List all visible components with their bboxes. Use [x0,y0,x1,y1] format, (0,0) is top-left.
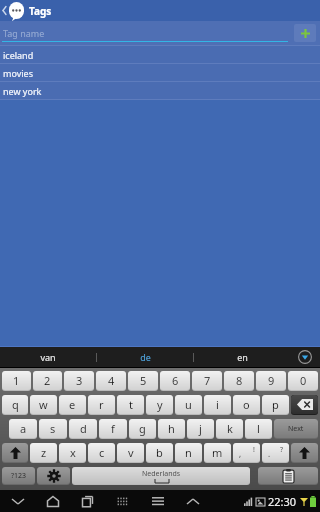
button[interactable]: en [194,347,290,367]
button[interactable]: 3 [64,371,94,390]
staticText: g [139,421,146,436]
button[interactable]: v [117,443,144,462]
staticText: 3 [76,373,83,388]
button[interactable]: Backspace [291,395,318,414]
button[interactable]: movies [0,64,320,81]
button[interactable]: Nederlands [72,467,250,484]
button[interactable]: x [59,443,86,462]
button[interactable]: 0 [288,371,318,390]
staticText: Next [288,424,304,434]
button[interactable]: Recent apps [70,490,105,512]
button[interactable]: s [39,419,67,438]
button[interactable]: q [2,395,28,414]
button[interactable]: van [0,347,96,367]
staticText: 9 [268,373,275,388]
button[interactable]: t [117,395,144,414]
button[interactable]: c [88,443,115,462]
button[interactable]: a [9,419,37,438]
staticText: , [239,448,242,459]
button[interactable]: Tag name [3,21,288,45]
staticText: h [168,421,175,436]
button[interactable]: m [204,443,231,462]
button[interactable]: ? [262,443,289,462]
staticText: de [140,351,151,363]
staticText: 5 [140,373,147,388]
button[interactable]: n [175,443,202,462]
button[interactable]: Menu [140,490,175,512]
staticText: q [12,397,19,412]
button[interactable]: Switch keyboard [105,490,140,512]
staticText: y [157,397,163,412]
button[interactable]: p [262,395,289,414]
staticText: Tags [29,4,52,18]
button[interactable]: h [158,419,185,438]
button[interactable]: d [69,419,97,438]
staticText: t [129,397,133,412]
staticText: van [40,351,56,363]
staticText: en [237,351,248,363]
button[interactable]: iceland [0,46,320,63]
button[interactable]: Expand suggestions [290,347,320,367]
staticText: new york [3,85,42,97]
staticText: Nederlands [142,469,181,479]
button[interactable]: 5 [128,371,158,390]
staticText: z [41,445,47,460]
staticText: d [80,421,87,436]
button[interactable]: 1 [2,371,31,390]
button[interactable]: 9 [256,371,286,390]
button[interactable]: 2 [33,371,62,390]
button[interactable]: Add tag [294,24,316,42]
staticText: j [199,421,202,436]
button[interactable]: Clipboard [258,467,318,484]
staticText: 7 [204,373,211,388]
button[interactable]: Home [35,490,70,512]
staticText: ! [253,445,255,455]
button[interactable]: e [59,395,86,414]
button[interactable]: Navigate up [0,0,26,21]
button[interactable]: y [146,395,173,414]
button[interactable]: r [88,395,115,414]
staticText: 6 [172,373,179,388]
button[interactable]: ?123 [2,467,35,484]
button[interactable]: o [233,395,260,414]
staticText: 0 [300,373,307,388]
staticText: 22:30 [268,494,297,509]
button[interactable]: de [97,347,193,367]
button[interactable]: u [175,395,202,414]
staticText: 2 [44,373,51,388]
button[interactable]: 8 [224,371,254,390]
button[interactable]: z [30,443,57,462]
button[interactable]: w [30,395,57,414]
button[interactable]: g [129,419,156,438]
button[interactable]: ! [233,443,260,462]
button[interactable]: Show [175,490,210,512]
staticText: movies [3,67,33,79]
button[interactable]: j [187,419,214,438]
button[interactable]: 4 [96,371,126,390]
button[interactable]: 6 [160,371,190,390]
button[interactable]: i [204,395,231,414]
staticText: k [227,421,233,436]
staticText: f [111,421,115,436]
button[interactable]: l [245,419,272,438]
button[interactable]: Hide keyboard [0,490,35,512]
staticText: b [156,445,163,460]
staticText: p [272,397,279,412]
staticText: 4 [108,373,115,388]
button[interactable]: new york [0,82,320,99]
staticText: ?123 [11,471,27,481]
button[interactable]: Keyboard settings [37,467,70,484]
button[interactable]: 7 [192,371,222,390]
button[interactable]: b [146,443,173,462]
button[interactable]: Shift [291,443,318,462]
button[interactable]: k [216,419,243,438]
button[interactable]: f [99,419,127,438]
button[interactable]: Shift [2,443,28,462]
staticText: x [70,445,76,460]
staticText: Tag name [3,27,45,39]
button[interactable]: Next [274,419,318,438]
staticText: u [185,397,192,412]
staticText: i [216,397,219,412]
staticText: ? [280,445,284,455]
button[interactable]: Status [244,494,316,509]
